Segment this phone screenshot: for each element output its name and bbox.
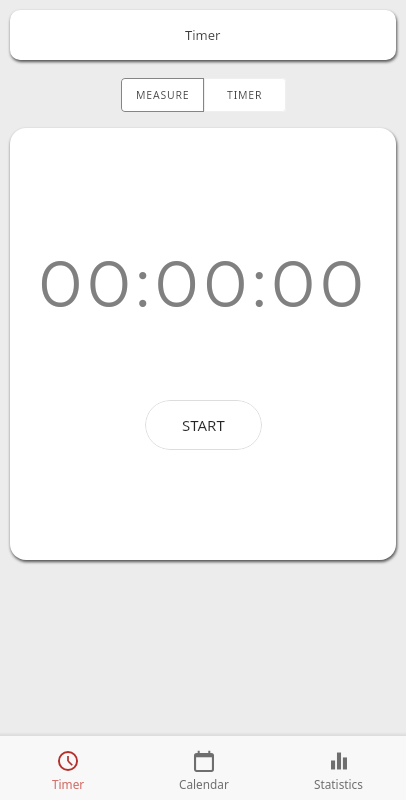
button[interactable]: Calendar (136, 742, 271, 800)
staticText: TIMER (227, 88, 263, 102)
staticText: Timer (52, 776, 85, 792)
other: Statistics (328, 750, 350, 772)
button[interactable]: START (145, 400, 262, 450)
button[interactable]: MEASURE (121, 78, 204, 112)
button[interactable]: Timer (10, 10, 396, 60)
staticText: START (182, 415, 225, 435)
staticText: Timer (185, 26, 221, 44)
staticText: MEASURE (136, 88, 190, 102)
staticText: Statistics (314, 776, 363, 792)
button[interactable]: Statistics (271, 742, 406, 800)
other: Calendar (193, 750, 215, 772)
button[interactable]: Timer (0, 742, 136, 800)
button[interactable]: TIMER (204, 78, 286, 112)
staticText: Calendar (179, 776, 229, 792)
staticText: 00:00:00 (38, 243, 369, 323)
other: Timer (57, 750, 79, 772)
